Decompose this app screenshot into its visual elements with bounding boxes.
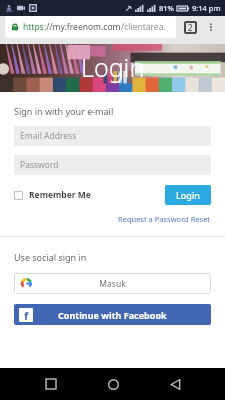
staticText: 81%: [159, 3, 174, 13]
staticText: Use social sign in: [14, 251, 87, 263]
button[interactable]: f: [14, 304, 211, 325]
button[interactable]: Home: [96, 368, 130, 400]
button[interactable]: Masuk: [14, 273, 211, 294]
staticText: Continue with Facebook: [58, 309, 167, 321]
staticText: Login: [176, 189, 200, 201]
button[interactable]: Email Address: [14, 126, 211, 146]
staticText: https: [23, 21, 44, 33]
staticText: 9:14 pm: [192, 3, 221, 13]
staticText: Sign in with your e-mail: [14, 105, 114, 117]
button[interactable]: Tabs: [184, 21, 197, 34]
staticText: f: [24, 308, 29, 322]
button[interactable]: https: [5, 16, 176, 38]
button[interactable]: Remember Me: [14, 189, 91, 201]
button[interactable]: Back: [158, 368, 192, 400]
button[interactable]: More options: [204, 20, 218, 34]
staticText: Password: [20, 159, 59, 171]
button[interactable]: Request a Password Reset: [118, 214, 211, 224]
button[interactable]: Password: [14, 155, 211, 175]
staticText: ://my.freenom.com: [44, 21, 121, 33]
staticText: Login: [81, 50, 145, 84]
button[interactable]: Login: [165, 185, 211, 205]
staticText: /clientarea.: [121, 21, 166, 33]
staticText: Masuk: [99, 278, 126, 290]
staticText: 2: [188, 22, 193, 33]
button[interactable]: Recent apps: [34, 368, 68, 400]
staticText: Email Address: [20, 130, 77, 142]
staticText: Remember Me: [29, 189, 91, 201]
